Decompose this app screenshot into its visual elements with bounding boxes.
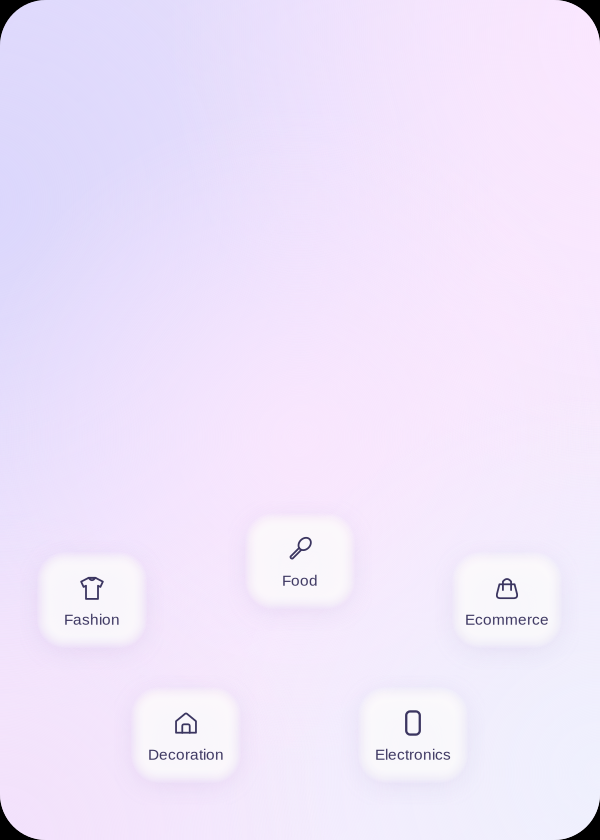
staticText: Electronics bbox=[375, 746, 451, 763]
button[interactable]: Fashion bbox=[44, 559, 140, 641]
button[interactable]: Ecommerce bbox=[459, 559, 555, 641]
button[interactable]: Decoration bbox=[138, 694, 234, 776]
staticText: Ecommerce bbox=[465, 611, 549, 628]
staticText: Decoration bbox=[148, 746, 224, 763]
staticText: Food bbox=[282, 572, 318, 589]
button[interactable]: Electronics bbox=[365, 694, 461, 776]
staticText: Fashion bbox=[64, 611, 120, 628]
button[interactable]: Food bbox=[252, 520, 348, 602]
